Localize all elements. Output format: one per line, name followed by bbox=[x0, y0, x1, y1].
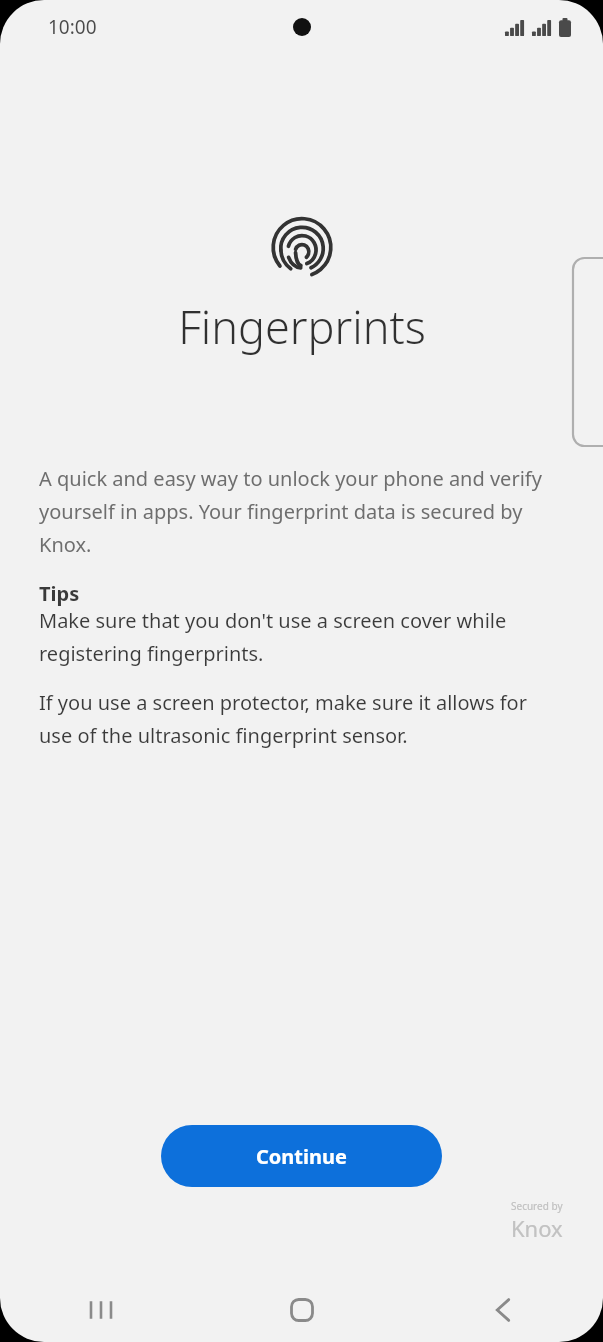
staticText: Make sure that you don't use a screen co… bbox=[39, 607, 564, 667]
staticText: If you use a screen protector, make sure… bbox=[39, 689, 564, 749]
staticText: A quick and easy way to unlock your phon… bbox=[39, 465, 564, 558]
staticText: Fingerprints bbox=[178, 296, 426, 357]
staticText: Secured by bbox=[511, 1199, 563, 1213]
staticText: Continue bbox=[256, 1143, 347, 1170]
button[interactable]: Home bbox=[201, 1278, 402, 1342]
staticText: Knox bbox=[511, 1213, 563, 1243]
button[interactable]: Recents bbox=[0, 1278, 201, 1342]
staticText: 10:00 bbox=[48, 14, 97, 40]
staticText: Tips bbox=[39, 580, 80, 607]
other: Fingerprint bbox=[266, 210, 338, 282]
button[interactable]: Back bbox=[402, 1278, 603, 1342]
button[interactable]: Continue bbox=[161, 1125, 442, 1187]
